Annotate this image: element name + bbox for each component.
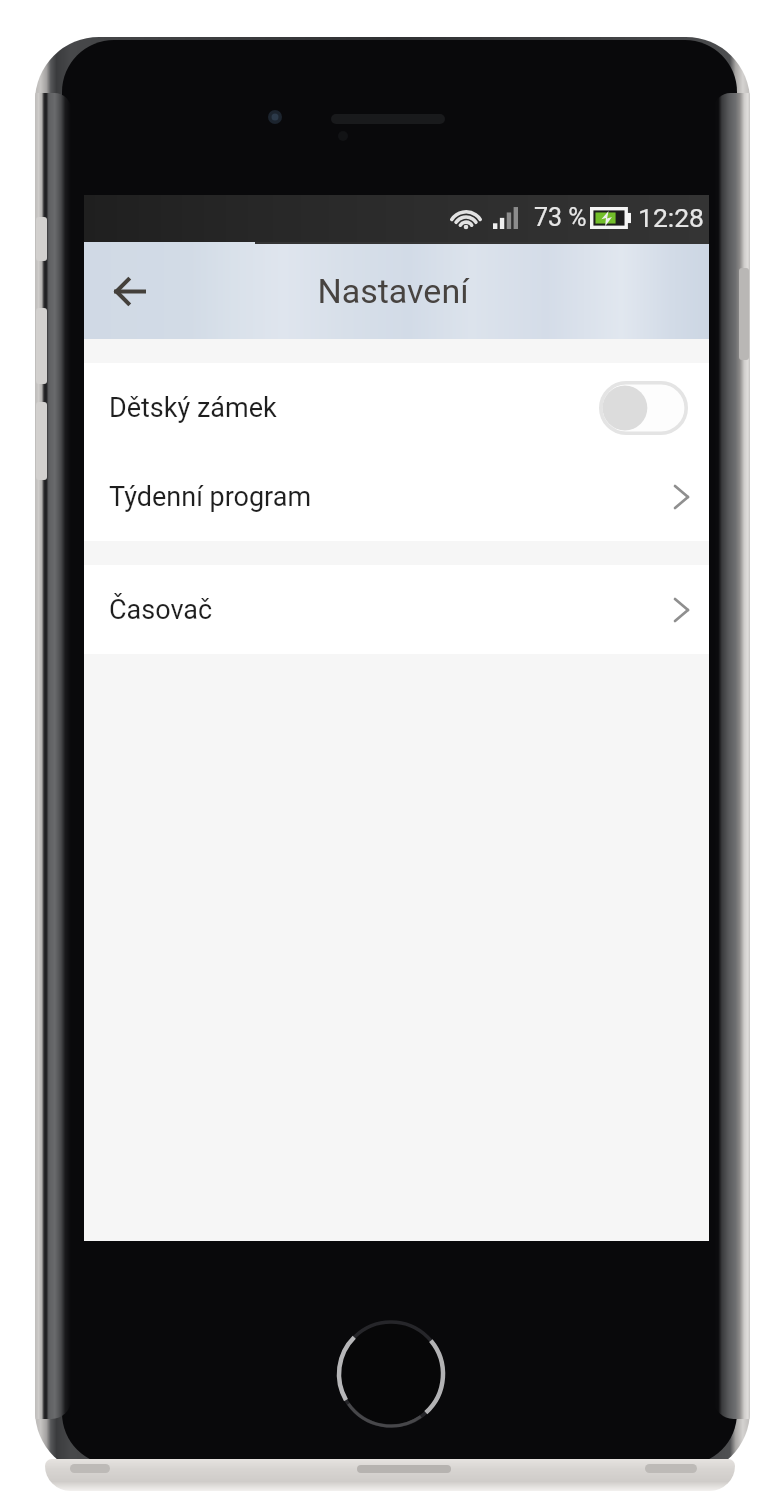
staticText: 12:28 (638, 202, 704, 233)
button[interactable]: Časovač (84, 565, 709, 654)
staticText: 73 % (534, 203, 587, 232)
button[interactable]: Back (96, 258, 162, 324)
button[interactable]: Týdenní program (84, 452, 709, 541)
staticText: Nastavení (317, 271, 469, 311)
staticText: Časovač (109, 594, 213, 626)
staticText: Dětský zámek (109, 392, 277, 424)
staticText: Týdenní program (109, 481, 312, 513)
button[interactable]: Dětský zámek (84, 363, 709, 452)
